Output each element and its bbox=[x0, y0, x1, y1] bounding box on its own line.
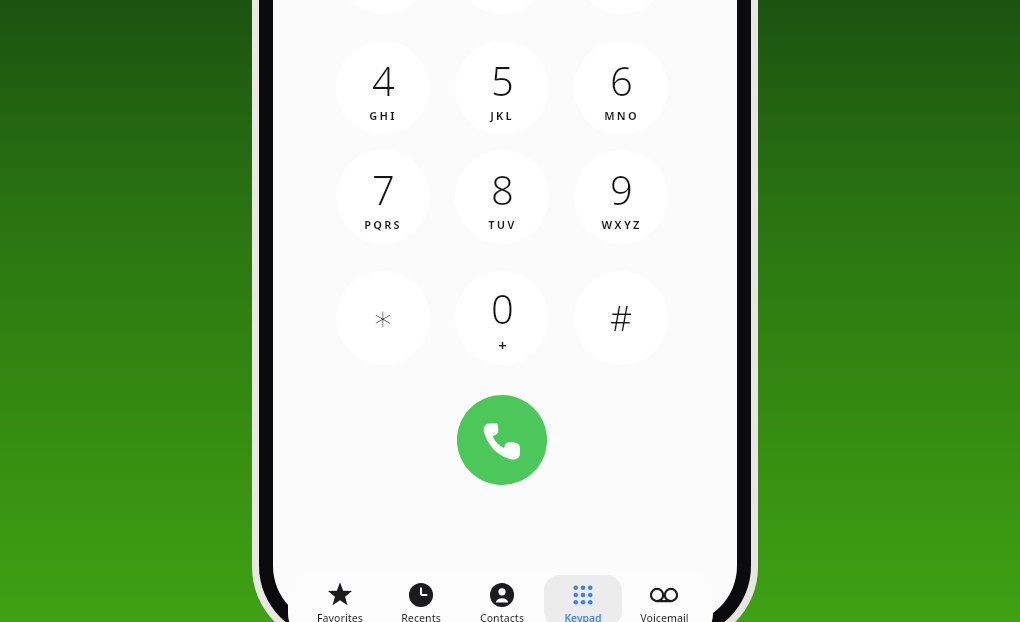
staticText: WXYZ bbox=[601, 217, 642, 232]
staticText: PQRS bbox=[364, 217, 402, 232]
staticText: 0 bbox=[491, 281, 514, 335]
staticText: # bbox=[610, 295, 632, 341]
staticText: 7 bbox=[372, 162, 395, 216]
staticText: JKL bbox=[490, 108, 514, 123]
staticText: 9 bbox=[610, 162, 633, 216]
staticText: ∗ bbox=[372, 298, 394, 338]
button[interactable]: 8 bbox=[455, 150, 549, 244]
button[interactable]: 9 bbox=[574, 150, 668, 244]
staticText: TUV bbox=[488, 217, 517, 232]
button[interactable]: Favorites bbox=[301, 575, 379, 622]
staticText: GHI bbox=[369, 108, 397, 123]
staticText: Recents bbox=[401, 611, 441, 622]
staticText: 4 bbox=[372, 53, 395, 107]
staticText: MNO bbox=[604, 108, 639, 123]
staticText: 6 bbox=[610, 53, 633, 107]
staticText: 5 bbox=[491, 53, 514, 107]
button[interactable]: 0 bbox=[455, 271, 549, 365]
staticText: Keypad bbox=[564, 611, 602, 622]
button[interactable]: Voicemail bbox=[625, 575, 703, 622]
button[interactable]: Keypad bbox=[544, 575, 622, 622]
staticText: + bbox=[498, 335, 507, 355]
button[interactable]: 6 bbox=[574, 41, 668, 135]
button[interactable]: Call bbox=[457, 395, 547, 485]
staticText: Favorites bbox=[317, 611, 363, 622]
button[interactable]: # bbox=[574, 271, 668, 365]
button[interactable]: ∗ bbox=[336, 271, 430, 365]
staticText: 8 bbox=[491, 162, 514, 216]
button[interactable]: 4 bbox=[336, 41, 430, 135]
staticText: Voicemail bbox=[640, 611, 689, 622]
button[interactable]: 7 bbox=[336, 150, 430, 244]
staticText: Contacts bbox=[480, 611, 524, 622]
button[interactable]: Recents bbox=[382, 575, 460, 622]
button[interactable]: Contacts bbox=[463, 575, 541, 622]
button[interactable]: 5 bbox=[455, 41, 549, 135]
